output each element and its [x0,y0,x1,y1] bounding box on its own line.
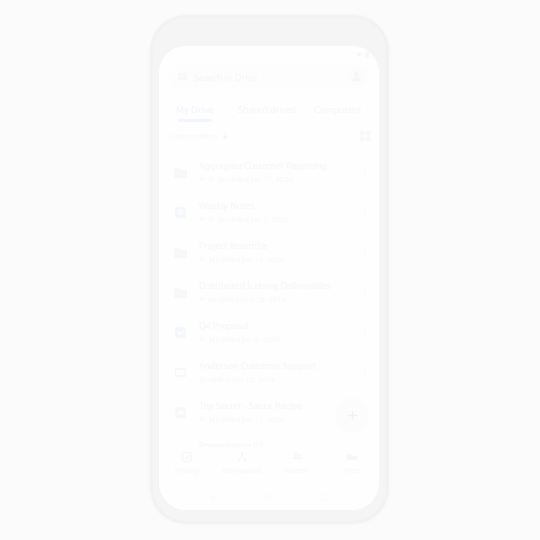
other: Menu [177,71,188,82]
staticText: My Drive [176,103,214,115]
